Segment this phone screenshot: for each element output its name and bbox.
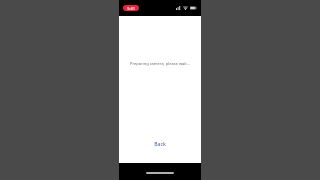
staticText: Back	[154, 141, 166, 148]
staticText: 9:41	[127, 6, 135, 11]
other: Home indicator	[146, 172, 174, 174]
staticText: Preparing camera, please wait…	[119, 61, 201, 66]
button[interactable]: Back	[148, 138, 172, 151]
button[interactable]: Screen recording	[123, 5, 139, 11]
